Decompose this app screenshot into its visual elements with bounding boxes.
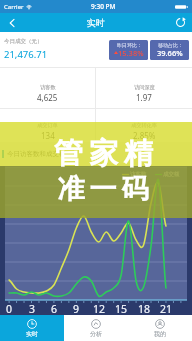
staticText: 访客数 xyxy=(130,171,147,178)
staticText: 0 xyxy=(6,302,13,316)
button[interactable]: 成交订单 xyxy=(0,109,95,142)
staticText: 移动占比： xyxy=(158,42,183,48)
staticText: 12 xyxy=(93,302,106,316)
button[interactable]: 实时 xyxy=(0,315,64,341)
staticText: 我的 xyxy=(154,330,166,338)
staticText: 15 xyxy=(115,302,128,316)
staticText: 分析 xyxy=(90,330,102,338)
staticText: 9:30 PM xyxy=(91,2,116,11)
staticText: 21 xyxy=(160,302,173,316)
staticText: 6 xyxy=(51,302,58,316)
staticText: 2.85% xyxy=(133,130,156,141)
staticText: 访客数 xyxy=(40,84,56,91)
staticText: 今日成交（元） xyxy=(4,38,43,45)
staticText: 9 xyxy=(73,302,80,316)
button[interactable]: Back xyxy=(0,13,24,32)
staticText: 成交额 xyxy=(163,171,180,178)
button[interactable]: 我的 xyxy=(128,315,192,341)
button[interactable]: 昨日环比： xyxy=(109,40,148,60)
button[interactable]: 移动占比： xyxy=(150,40,189,60)
staticText: 134 xyxy=(41,130,55,141)
staticText: 成交订单 xyxy=(37,122,58,129)
staticText: 准一码 xyxy=(55,172,151,206)
staticText: 实时 xyxy=(26,330,38,338)
button[interactable]: Refresh xyxy=(168,13,192,32)
staticText: 15.38% xyxy=(118,48,144,58)
staticText: 21,476.71 xyxy=(4,48,48,61)
button[interactable]: 访问深度 xyxy=(96,68,192,108)
button[interactable]: 成交转化率 xyxy=(96,109,192,142)
staticText: 实时 xyxy=(87,17,105,28)
staticText: 39.66% xyxy=(157,48,183,58)
staticText: 访问深度 xyxy=(134,84,155,91)
staticText: 3 xyxy=(29,302,36,316)
staticText: 1.97 xyxy=(136,92,152,103)
staticText: 昨日环比： xyxy=(117,42,142,48)
staticText: 成交转化率 xyxy=(131,122,157,129)
staticText: 4,625 xyxy=(37,92,58,103)
button[interactable]: 分析 xyxy=(64,315,128,341)
staticText: 今日访客数和成交额 xyxy=(7,150,66,158)
staticText: 管家精 xyxy=(51,135,156,172)
staticText: 18 xyxy=(138,302,151,316)
button[interactable]: 访客数 xyxy=(0,68,95,108)
staticText: Carrier xyxy=(4,3,24,11)
